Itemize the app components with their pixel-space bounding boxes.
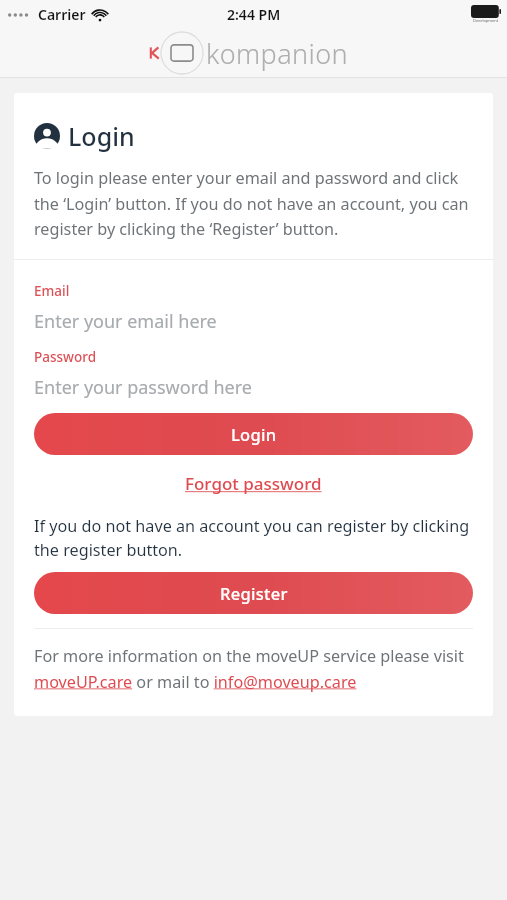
staticText: kompanion: [206, 35, 348, 72]
staticText: If you do not have an account you can re…: [34, 515, 473, 561]
staticText: To login please enter your email and pas…: [34, 167, 473, 239]
button[interactable]: Enter your email here: [34, 300, 473, 342]
staticText: 2:44 PM: [227, 5, 281, 24]
button[interactable]: Register: [34, 572, 473, 614]
staticText: For more information on the moveUP servi…: [34, 645, 473, 692]
staticText: Development: [473, 18, 499, 23]
button[interactable]: Login: [34, 413, 473, 455]
staticText: Login: [231, 423, 277, 445]
staticText: Register: [220, 582, 288, 604]
staticText: Carrier: [38, 5, 86, 24]
staticText: Login: [68, 119, 135, 153]
staticText: Forgot password: [185, 472, 322, 495]
staticText: Enter your email here: [34, 309, 217, 334]
staticText: Email: [34, 282, 70, 300]
staticText: Enter your password here: [34, 375, 252, 400]
staticText: Password: [34, 348, 97, 366]
button[interactable]: Forgot password: [34, 472, 473, 495]
button[interactable]: Enter your password here: [34, 366, 473, 408]
